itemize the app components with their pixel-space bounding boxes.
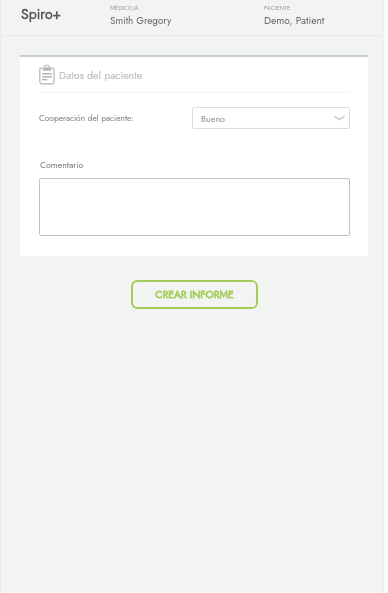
other: Patient data [39, 64, 55, 84]
staticText: Smith Gregory [110, 13, 172, 27]
staticText: MÉDICO/A [110, 4, 139, 13]
staticText: PACIENTE [264, 4, 291, 13]
staticText: Bueno [201, 112, 226, 125]
staticText: CREAR INFORME [155, 287, 234, 302]
staticText: Datos del paciente [59, 68, 143, 83]
staticText: Demo, Patient [264, 13, 325, 28]
staticText: Cooperación del paciente: [39, 112, 134, 124]
button[interactable]: CREAR INFORME [131, 280, 258, 309]
staticText: Comentario [40, 159, 84, 172]
button[interactable] [39, 178, 350, 236]
staticText: Spiro+ [21, 4, 62, 24]
button[interactable]: Bueno [192, 107, 350, 129]
